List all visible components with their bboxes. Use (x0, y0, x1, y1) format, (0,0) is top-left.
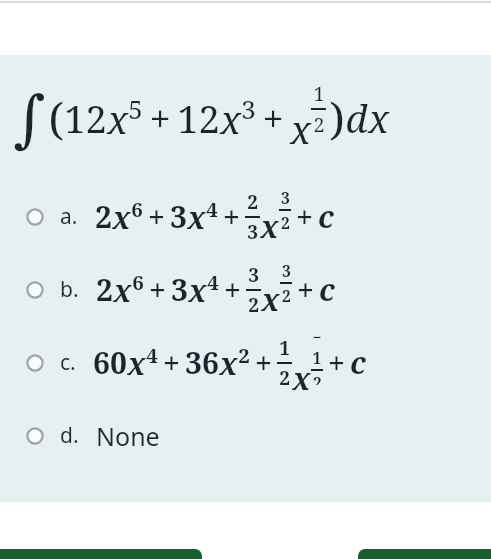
button[interactable]: d. (0, 399, 491, 472)
staticText: 2 (281, 212, 290, 233)
button[interactable]: b. (0, 253, 491, 326)
button[interactable]: c. (0, 326, 491, 399)
staticText: 5 (128, 91, 143, 126)
staticText: −1 (311, 326, 323, 368)
staticText: 2 (279, 365, 290, 391)
staticText: 2 (282, 285, 291, 306)
staticText: 4 (207, 268, 219, 296)
staticText: 2 (96, 269, 113, 310)
button[interactable]: a. (0, 180, 491, 253)
staticText: x (290, 103, 311, 155)
staticText: x (260, 206, 279, 247)
staticText: 2 (248, 292, 259, 318)
staticText: c. (60, 348, 76, 377)
staticText: + (149, 92, 171, 144)
staticText: 12 (64, 92, 107, 144)
staticText: c (350, 342, 366, 383)
staticText: ∫ (13, 82, 46, 154)
staticText: + (296, 196, 313, 237)
staticText: 60 (93, 342, 127, 383)
staticText: x (187, 197, 206, 238)
staticText: 6 (132, 268, 144, 296)
staticText: x (188, 270, 207, 311)
staticText: ) (329, 88, 345, 148)
staticText: d. (60, 421, 79, 450)
staticText: 3 (282, 260, 291, 281)
staticText: c (319, 269, 335, 310)
staticText: x (112, 197, 131, 238)
staticText: + (149, 269, 166, 310)
staticText: 3 (247, 219, 258, 245)
staticText: c (318, 196, 334, 237)
staticText: 3 (281, 187, 290, 208)
staticText: ( (48, 88, 64, 148)
staticText: 3 (171, 269, 188, 310)
staticText: + (223, 196, 240, 237)
staticText: x (368, 92, 389, 144)
staticText: 3 (170, 196, 187, 237)
staticText: x (220, 93, 241, 145)
staticText: 1 (279, 335, 290, 361)
staticText: d (345, 92, 368, 144)
staticText: x (292, 358, 311, 399)
staticText: None (96, 419, 160, 453)
staticText: + (148, 196, 165, 237)
staticText: 2 (247, 189, 258, 215)
staticText: 6 (131, 195, 143, 223)
staticText: 3 (241, 91, 256, 126)
staticText: 4 (146, 341, 158, 369)
staticText: 2 (313, 111, 325, 138)
staticText: 2 (95, 196, 112, 237)
staticText: b. (60, 275, 79, 304)
staticText: + (297, 269, 314, 310)
staticText: x (113, 270, 132, 311)
staticText: + (328, 342, 345, 383)
staticText: x (107, 93, 128, 145)
staticText: 36 (185, 342, 219, 383)
staticText: + (163, 342, 180, 383)
staticText: x (261, 279, 280, 320)
staticText: + (262, 92, 284, 144)
staticText: 12 (177, 92, 220, 144)
staticText: x (219, 343, 238, 384)
staticText: 1 (313, 80, 325, 107)
staticText: 3 (248, 262, 259, 288)
button[interactable]: Primary action (0, 549, 202, 559)
staticText: 2 (238, 341, 250, 369)
staticText: + (224, 269, 241, 310)
staticText: 2 (313, 372, 322, 385)
button[interactable]: Secondary action (358, 549, 491, 559)
staticText: + (255, 342, 272, 383)
staticText: 4 (206, 195, 218, 223)
staticText: a. (60, 202, 78, 231)
staticText: x (127, 343, 146, 384)
